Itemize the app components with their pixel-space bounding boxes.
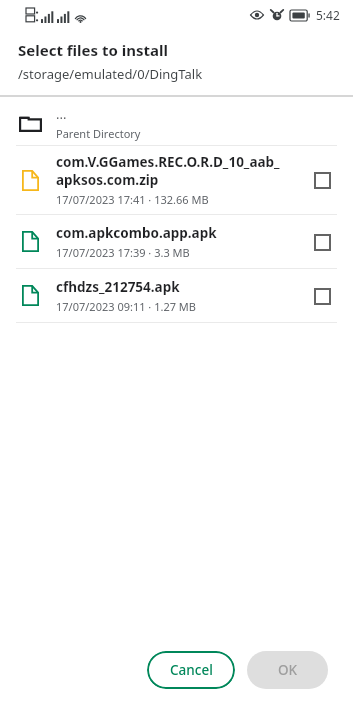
button[interactable]: Folder <box>0 100 353 145</box>
button[interactable]: OK <box>247 651 328 689</box>
other: Folder <box>19 113 42 132</box>
other: File <box>22 231 39 252</box>
staticText: apksos.com.zip <box>56 171 159 189</box>
button[interactable]: File <box>0 215 353 268</box>
other: File <box>22 285 39 306</box>
button[interactable]: Select Apk file <box>307 227 337 257</box>
staticText: ... <box>56 105 67 123</box>
staticText: 17/07/2023 17:41 · 132.66 MB <box>56 192 209 207</box>
staticText: 17/07/2023 09:11 · 1.27 MB <box>56 299 196 314</box>
staticText: 5:42 <box>316 7 340 23</box>
button[interactable]: Select Zip file <box>307 165 337 195</box>
staticText: cfhdzs_212754.apk <box>56 278 180 296</box>
staticText: Parent Directory <box>56 126 141 141</box>
button[interactable]: Cancel <box>147 651 235 689</box>
button[interactable]: Select Apk file <box>307 281 337 311</box>
staticText: Cancel <box>170 661 213 679</box>
staticText: OK <box>278 661 298 679</box>
staticText: /storage/emulated/0/DingTalk <box>18 65 203 83</box>
staticText: com.V.GGames.REC.O.R.D_10_aab_ <box>56 153 280 171</box>
button[interactable]: File <box>0 269 353 322</box>
other: File <box>22 170 39 191</box>
staticText: com.apkcombo.app.apk <box>56 224 217 242</box>
staticText: 17/07/2023 17:39 · 3.3 MB <box>56 245 190 260</box>
button[interactable]: File <box>0 146 353 214</box>
staticText: Select files to install <box>18 40 168 60</box>
